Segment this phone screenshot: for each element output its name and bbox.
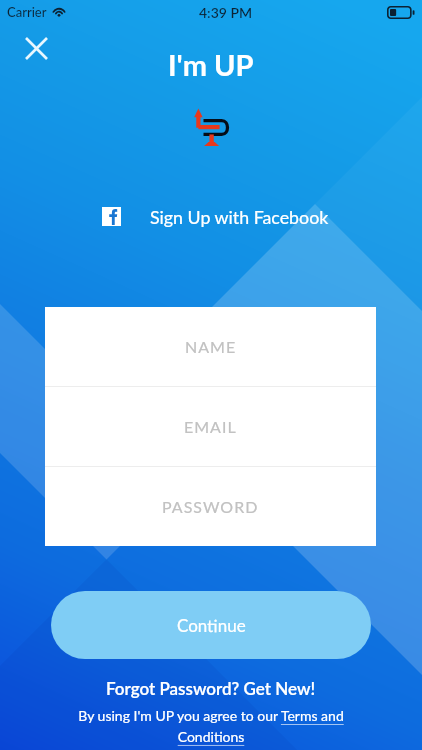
button[interactable]: Continue	[51, 591, 371, 659]
staticText: I'm UP	[168, 47, 254, 82]
staticText: PASSWORD	[162, 497, 259, 516]
button[interactable]: Forgot Password? Get New!	[100, 676, 322, 700]
staticText: Sign Up with Facebook	[150, 206, 329, 227]
button[interactable]: Close	[17, 29, 56, 68]
staticText: 4:39 PM	[199, 4, 253, 21]
button[interactable]: PASSWORD	[45, 467, 376, 546]
staticText: Carrier	[7, 4, 47, 20]
button[interactable]: NAME	[45, 307, 376, 386]
button[interactable]: EMAIL	[45, 387, 376, 466]
staticText: Forgot Password? Get New!	[106, 678, 316, 698]
staticText: By using I'm UP you agree to our Terms a…	[52, 707, 370, 745]
button[interactable]: Sign Up with Facebook	[92, 196, 339, 237]
staticText: Continue	[177, 615, 246, 635]
staticText: NAME	[185, 337, 237, 356]
staticText: EMAIL	[184, 417, 237, 436]
